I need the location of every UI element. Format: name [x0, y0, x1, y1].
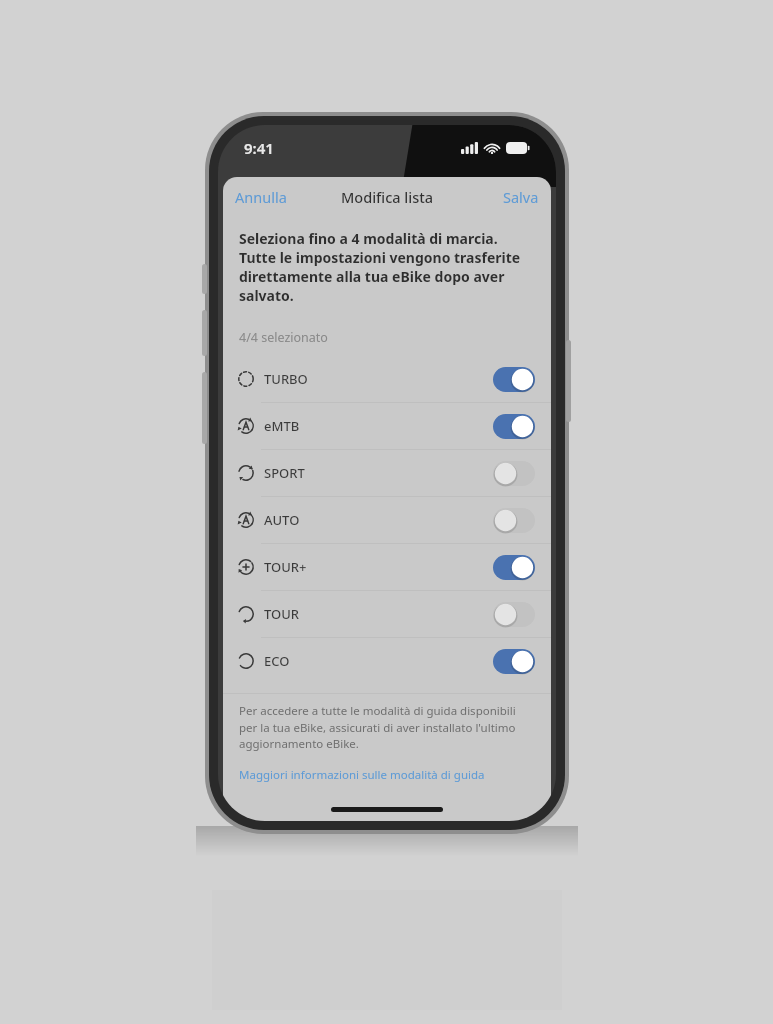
button[interactable]: Off	[493, 508, 535, 533]
staticText: Salva	[503, 187, 539, 207]
button[interactable]: AUTO	[223, 497, 551, 543]
button[interactable]: Annulla	[223, 179, 299, 215]
button[interactable]: On	[493, 414, 535, 439]
staticText: AUTO	[264, 511, 300, 529]
button[interactable]: Salva	[491, 179, 551, 215]
staticText: eMTB	[264, 417, 300, 435]
button[interactable]: On	[493, 649, 535, 674]
button[interactable]: On	[493, 555, 535, 580]
staticText: ECO	[264, 652, 290, 670]
button[interactable]: TURBO	[223, 356, 551, 402]
button[interactable]: TOUR+	[223, 544, 551, 590]
staticText: SPORT	[264, 464, 305, 482]
button[interactable]: ECO	[223, 638, 551, 684]
staticText: 4/4 selezionato	[239, 329, 328, 346]
button[interactable]: TOUR	[223, 591, 551, 637]
staticText: 9:41	[244, 138, 274, 158]
staticText: TOUR+	[264, 558, 307, 576]
staticText: Annulla	[235, 187, 287, 207]
button[interactable]: Off	[493, 602, 535, 627]
button[interactable]: eMTB	[223, 403, 551, 449]
staticText: TURBO	[264, 370, 308, 388]
staticText: TOUR	[264, 605, 300, 623]
staticText: Per accedere a tutte le modalità di guid…	[239, 703, 535, 751]
staticText: Maggiori informazioni sulle modalità di …	[239, 767, 485, 783]
button[interactable]: Off	[493, 461, 535, 486]
button[interactable]: On	[493, 367, 535, 392]
staticText: Modifica lista	[341, 187, 434, 207]
button[interactable]: Maggiori informazioni sulle modalità di …	[223, 765, 501, 785]
button[interactable]: SPORT	[223, 450, 551, 496]
staticText: Seleziona fino a 4 modalità di marcia. T…	[239, 229, 535, 305]
